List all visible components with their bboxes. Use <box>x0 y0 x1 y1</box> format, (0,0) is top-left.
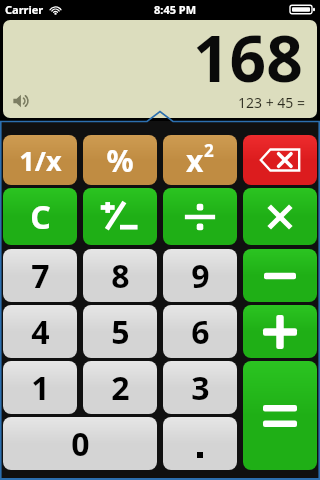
staticText: 2 <box>111 366 130 410</box>
button[interactable]: Equals <box>243 361 317 470</box>
staticText: 2 <box>204 139 214 162</box>
button[interactable]: Clear <box>3 188 77 245</box>
button[interactable]: Decimal point <box>163 417 237 470</box>
staticText: 0 <box>71 422 90 466</box>
button[interactable]: x squared <box>163 135 237 185</box>
button[interactable]: Minus <box>243 249 317 302</box>
staticText: 168 <box>193 20 303 101</box>
staticText: C <box>30 195 51 239</box>
button[interactable]: 4 <box>3 305 77 358</box>
staticText: 8 <box>111 254 130 298</box>
staticText: 5 <box>111 310 130 354</box>
staticText: 8:45 PM <box>154 2 197 17</box>
staticText: 9 <box>191 254 210 298</box>
button[interactable]: Plus <box>243 305 317 358</box>
button[interactable]: % <box>83 135 157 185</box>
staticText: 123 + 45 = <box>238 93 305 112</box>
button[interactable]: Plus minus <box>83 188 157 245</box>
staticText: 6 <box>191 310 210 354</box>
button[interactable]: 2 <box>83 361 157 414</box>
button[interactable]: Divide <box>163 188 237 245</box>
staticText: % <box>106 140 134 181</box>
button[interactable]: 0 <box>3 417 157 470</box>
staticText: 3 <box>191 366 210 410</box>
button[interactable]: 6 <box>163 305 237 358</box>
button[interactable]: 1 <box>3 361 77 414</box>
staticText: Carrier <box>5 2 44 17</box>
button[interactable]: 5 <box>83 305 157 358</box>
staticText: 4 <box>31 310 50 354</box>
staticText: 1 <box>31 366 50 410</box>
button[interactable]: 7 <box>3 249 77 302</box>
button[interactable]: 8 <box>83 249 157 302</box>
button[interactable]: 9 <box>163 249 237 302</box>
button[interactable]: 3 <box>163 361 237 414</box>
staticText: x <box>186 140 204 181</box>
button[interactable]: Multiply <box>243 188 317 245</box>
button[interactable]: 1/x <box>3 135 77 185</box>
button[interactable]: Backspace <box>243 135 317 185</box>
staticText: 7 <box>31 254 50 298</box>
staticText: 1/x <box>19 142 62 179</box>
other: Sound <box>13 94 31 108</box>
